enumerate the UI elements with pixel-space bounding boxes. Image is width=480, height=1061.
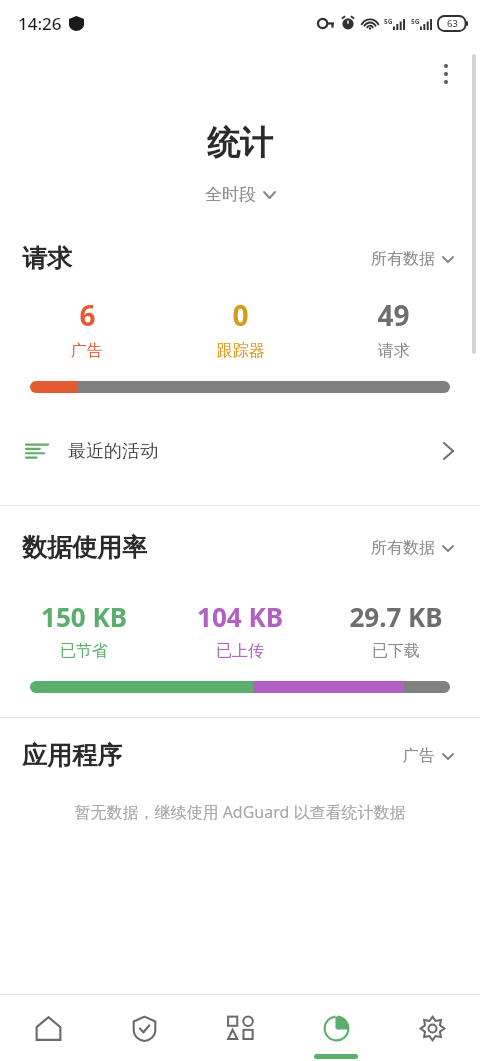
staticText: 所有数据	[371, 538, 435, 558]
button[interactable]: Home	[0, 995, 96, 1061]
staticText: 全时段	[205, 184, 256, 205]
staticText: 所有数据	[371, 249, 435, 269]
staticText: 14:26	[18, 12, 62, 35]
staticText: 广告	[71, 341, 103, 361]
button[interactable]: Apps	[192, 995, 288, 1061]
button[interactable]: Statistics	[288, 995, 384, 1061]
button[interactable]: 150 KB	[6, 599, 162, 661]
button[interactable]: Settings	[384, 995, 480, 1061]
button[interactable]: 所有数据	[365, 534, 460, 562]
staticText: 已节省	[60, 641, 108, 661]
staticText: 6	[79, 296, 96, 334]
staticText: 63	[447, 17, 458, 30]
button[interactable]: 29.7 KB	[318, 599, 474, 661]
staticText: 请求	[378, 341, 410, 361]
button[interactable]: More options	[422, 50, 470, 98]
staticText: 0	[232, 296, 249, 334]
staticText: 已下载	[372, 641, 420, 661]
button[interactable]: Protection	[96, 995, 192, 1061]
staticText: 5G	[384, 17, 393, 26]
button[interactable]: 广告	[397, 742, 460, 770]
staticText: 104 KB	[197, 599, 283, 634]
staticText: 数据使用率	[22, 532, 147, 563]
staticText: 暂无数据，继续使用 AdGuard 以查看统计数据	[20, 801, 460, 823]
button[interactable]: 6	[10, 296, 164, 361]
staticText: 最近的活动	[68, 440, 158, 463]
staticText: 广告	[403, 746, 435, 766]
staticText: 统计	[0, 122, 480, 164]
button[interactable]: 最近的活动	[0, 423, 480, 479]
staticText: 5G	[411, 17, 420, 26]
staticText: 跟踪器	[217, 341, 265, 361]
staticText: 已上传	[216, 641, 264, 661]
button[interactable]: 49	[317, 296, 470, 361]
staticText: 29.7 KB	[349, 599, 443, 634]
button[interactable]: 0	[164, 296, 317, 361]
button[interactable]: 所有数据	[365, 245, 460, 273]
staticText: 请求	[22, 243, 72, 274]
staticText: 49	[377, 296, 410, 334]
button[interactable]: 全时段	[197, 180, 284, 209]
staticText: 应用程序	[22, 740, 122, 771]
staticText: 150 KB	[41, 599, 127, 634]
button[interactable]: 104 KB	[162, 599, 318, 661]
